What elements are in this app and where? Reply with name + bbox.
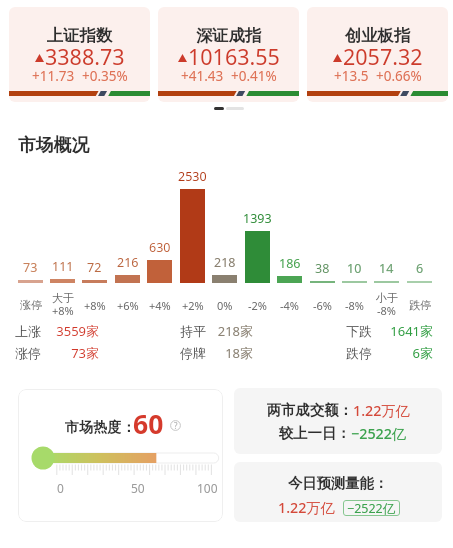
staticText: 3559家 — [41, 322, 99, 340]
staticText: +6% — [117, 298, 139, 313]
staticText: 186 — [279, 255, 301, 272]
staticText: 218家 — [206, 322, 253, 340]
staticText: 10163.55 — [188, 42, 280, 71]
staticText: -4% — [280, 298, 299, 313]
staticText: +0.41% — [231, 67, 277, 85]
staticText: ? — [174, 420, 178, 431]
button[interactable]: 持平 — [180, 322, 253, 340]
staticText: 停牌 — [180, 345, 206, 361]
staticText: 3388.73 — [45, 42, 125, 71]
staticText: 2530 — [178, 168, 207, 185]
staticText: 0% — [217, 298, 233, 313]
staticText: 6 — [416, 260, 424, 277]
staticText: +0.35% — [82, 67, 128, 85]
staticText: -6% — [313, 298, 332, 313]
staticText: 18家 — [206, 344, 253, 362]
button[interactable]: 深证成指 — [158, 7, 299, 102]
staticText: -2% — [248, 298, 267, 313]
staticText: +8% — [52, 303, 74, 318]
staticText: 38 — [315, 260, 330, 277]
staticText: 1641家 — [372, 322, 433, 340]
button[interactable]: Help — [170, 420, 181, 431]
button[interactable]: 上证指数 — [9, 7, 150, 102]
staticText: -8% — [377, 303, 396, 318]
staticText: 1.22万亿 — [278, 498, 336, 518]
staticText: 市场热度： — [65, 418, 136, 436]
staticText: -8% — [345, 298, 364, 313]
staticText: +0.66% — [376, 67, 422, 85]
button[interactable]: 上涨 — [15, 322, 99, 340]
staticText: 持平 — [180, 323, 206, 339]
staticText: 创业板指 — [345, 25, 411, 46]
staticText: −2522亿 — [347, 500, 396, 516]
staticText: 10 — [347, 260, 362, 277]
staticText: 深证成指 — [196, 25, 262, 46]
staticText: 涨停 — [20, 298, 42, 312]
staticText: 两市成交额： — [267, 401, 353, 419]
staticText: 下跌 — [346, 323, 372, 339]
staticText: 111 — [52, 258, 74, 275]
staticText: 今日预测量能： — [288, 474, 389, 492]
staticText: 上涨 — [15, 323, 41, 339]
staticText: 216 — [117, 254, 139, 271]
staticText: 1393 — [243, 210, 272, 227]
button[interactable]: 创业板指 — [307, 7, 448, 102]
staticText: 50 — [131, 480, 145, 496]
staticText: 6家 — [372, 344, 433, 362]
staticText: 0 — [57, 480, 64, 496]
staticText: +13.5 — [334, 67, 369, 85]
staticText: +41.43 — [181, 67, 224, 85]
staticText: +8% — [84, 298, 106, 313]
staticText: 2057.32 — [343, 42, 423, 71]
button[interactable]: 市场热度： — [18, 389, 223, 522]
button[interactable]: 涨停 — [15, 344, 99, 362]
staticText: +11.73 — [32, 67, 75, 85]
button[interactable]: 下跌 — [346, 322, 433, 340]
staticText: 100 — [197, 480, 218, 496]
staticText: 72 — [87, 259, 102, 276]
button[interactable]: 两市成交额： — [234, 388, 442, 454]
staticText: 630 — [149, 239, 171, 256]
staticText: −2522亿 — [351, 424, 407, 444]
staticText: 60 — [133, 406, 164, 442]
staticText: 大于 — [52, 291, 74, 305]
staticText: 73家 — [41, 344, 99, 362]
button[interactable]: 今日预测量能： — [234, 462, 442, 522]
staticText: 1.22万亿 — [353, 401, 411, 421]
staticText: 小于 — [376, 291, 398, 305]
button[interactable]: 停牌 — [180, 344, 253, 362]
staticText: 73 — [23, 259, 38, 276]
staticText: 跌停 — [346, 345, 372, 361]
staticText: 涨停 — [15, 345, 41, 361]
staticText: 市场概况 — [18, 134, 90, 156]
staticText: 14 — [379, 260, 394, 277]
button[interactable]: 跌停 — [346, 344, 433, 362]
staticText: +4% — [149, 298, 171, 313]
staticText: 218 — [214, 254, 236, 271]
staticText: 上证指数 — [47, 25, 113, 46]
staticText: +2% — [182, 298, 204, 313]
staticText: 较上一日： — [279, 424, 351, 442]
staticText: 跌停 — [409, 298, 431, 312]
